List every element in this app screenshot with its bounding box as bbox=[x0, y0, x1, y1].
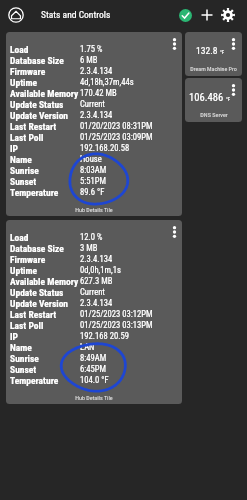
staticText: Database Size bbox=[10, 243, 80, 254]
staticText: 2.3.4.134 bbox=[80, 110, 113, 120]
staticText: 12.0 % bbox=[80, 232, 103, 242]
staticText: 4d,18h,37m,44s bbox=[80, 77, 134, 87]
staticText: Uptime bbox=[10, 265, 80, 276]
staticText: Stats and Controls bbox=[41, 9, 111, 20]
button[interactable]: Load bbox=[6, 220, 182, 404]
staticText: Sunrise bbox=[10, 353, 80, 364]
staticText: Sunset bbox=[10, 176, 80, 187]
staticText: Firmware bbox=[10, 66, 80, 77]
staticText: Uptime bbox=[10, 77, 80, 88]
button[interactable]: Settings bbox=[217, 4, 239, 26]
staticText: 106.486 bbox=[189, 91, 224, 103]
button[interactable]: More options bbox=[232, 38, 235, 50]
button[interactable]: More options bbox=[232, 84, 235, 96]
staticText: 01/25/2023 03:12PM bbox=[80, 309, 153, 319]
staticText: Current bbox=[80, 99, 105, 109]
staticText: Database Size bbox=[10, 55, 80, 66]
staticText: DNS Server bbox=[200, 111, 228, 118]
staticText: 01/25/2023 03:13PM bbox=[80, 320, 153, 330]
button[interactable]: 106.486 bbox=[185, 78, 242, 122]
staticText: IP bbox=[10, 143, 80, 154]
button[interactable]: Add bbox=[196, 4, 218, 26]
staticText: 01/20/2023 08:31PM bbox=[80, 121, 153, 131]
staticText: Hub Details Tile bbox=[75, 206, 113, 213]
staticText: LAN bbox=[80, 342, 95, 352]
staticText: Last Restart bbox=[10, 121, 80, 132]
staticText: Temperature bbox=[10, 375, 80, 386]
staticText: Load bbox=[10, 44, 80, 55]
staticText: 192.168.20.58 bbox=[80, 143, 130, 153]
staticText: Sunrise bbox=[10, 165, 80, 176]
staticText: Available Memory bbox=[10, 88, 80, 99]
staticText: 170.42 MB bbox=[80, 88, 117, 98]
staticText: 6 MB bbox=[80, 55, 98, 65]
staticText: 6:45PM bbox=[80, 364, 106, 374]
button[interactable]: Done bbox=[174, 4, 196, 26]
staticText: 2.3.4.134 bbox=[80, 298, 113, 308]
button[interactable]: More options bbox=[173, 38, 176, 50]
staticText: Temperature bbox=[10, 187, 80, 198]
staticText: Firmware bbox=[10, 254, 80, 265]
staticText: 104.0 °F bbox=[80, 375, 109, 385]
staticText: Last Poll bbox=[10, 320, 80, 331]
staticText: House bbox=[80, 154, 102, 164]
staticText: Hub Details Tile bbox=[75, 394, 113, 401]
staticText: Update Status bbox=[10, 287, 80, 298]
staticText: 192.168 20.59 bbox=[80, 331, 129, 341]
button[interactable]: 132.8 bbox=[185, 32, 242, 76]
staticText: Sunset bbox=[10, 364, 80, 375]
staticText: 627.3 MB bbox=[80, 276, 113, 286]
staticText: Name bbox=[10, 154, 80, 165]
staticText: 8:49AM bbox=[80, 353, 107, 363]
staticText: Update Status bbox=[10, 99, 80, 110]
staticText: 01/25/2023 03:09PM bbox=[80, 132, 153, 142]
staticText: IP bbox=[10, 331, 80, 342]
staticText: Dream Machine Pro bbox=[190, 65, 237, 72]
staticText: 3 MB bbox=[80, 243, 98, 253]
staticText: °F bbox=[220, 49, 225, 55]
staticText: Last Restart bbox=[10, 309, 80, 320]
button[interactable]: More options bbox=[173, 226, 176, 238]
staticText: 2.3.4.134 bbox=[80, 66, 113, 76]
staticText: Load bbox=[10, 232, 80, 243]
staticText: Name bbox=[10, 342, 80, 353]
staticText: Last Poll bbox=[10, 132, 80, 143]
staticText: Available Memory bbox=[10, 276, 80, 287]
button[interactable]: Load bbox=[6, 32, 182, 216]
staticText: 2.3.4.134 bbox=[80, 254, 113, 264]
staticText: Update Version bbox=[10, 110, 80, 121]
staticText: 132.8 bbox=[196, 45, 218, 56]
staticText: 89.6 °F bbox=[80, 187, 105, 197]
staticText: 8:03AM bbox=[80, 165, 107, 175]
staticText: 0d,0h,1m,1s bbox=[80, 265, 121, 275]
staticText: 5:51PM bbox=[80, 176, 106, 186]
staticText: Update Version bbox=[10, 298, 80, 309]
staticText: 1.75 % bbox=[80, 44, 103, 54]
staticText: °F bbox=[226, 96, 231, 102]
staticText: Current bbox=[80, 287, 105, 297]
